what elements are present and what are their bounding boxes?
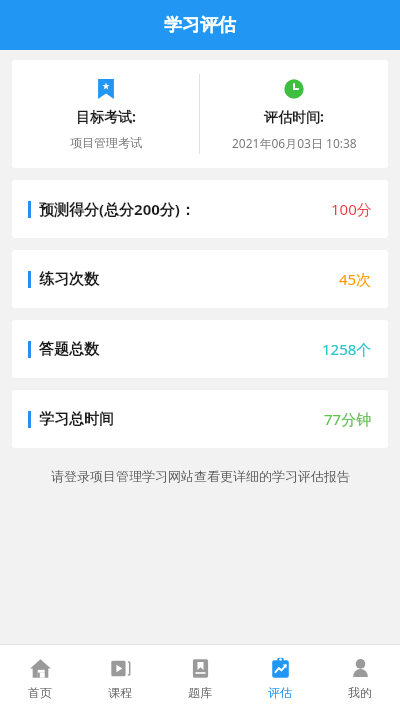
button[interactable]: 预测得分(总分200分)： (12, 180, 388, 238)
staticText: 2021年06月03日 10:38 (232, 135, 357, 151)
staticText: 77分钟 (324, 409, 372, 429)
staticText: 1258个 (322, 339, 372, 359)
staticText: 学习总时间 (39, 410, 114, 429)
staticText: 题库 (188, 685, 212, 700)
button[interactable]: 首页 (0, 645, 80, 711)
staticText: 目标考试: (76, 107, 136, 126)
staticText: 我的 (348, 685, 372, 700)
button[interactable]: 我的 (320, 645, 400, 711)
button[interactable]: 答题总数 (12, 320, 388, 378)
staticText: 100分 (331, 199, 372, 219)
button[interactable]: 题库 (160, 645, 240, 711)
staticText: 课程 (108, 685, 132, 700)
button[interactable]: 评估 (240, 645, 320, 711)
button[interactable]: 练习次数 (12, 250, 388, 308)
staticText: 首页 (28, 685, 52, 700)
button[interactable]: 课程 (80, 645, 160, 711)
staticText: 答题总数 (39, 340, 99, 359)
staticText: 评估时间: (264, 107, 324, 126)
button[interactable]: 学习总时间 (12, 390, 388, 448)
staticText: 45次 (339, 269, 372, 289)
staticText: 练习次数 (39, 270, 99, 289)
staticText: 项目管理考试 (70, 135, 142, 150)
staticText: 评估 (268, 685, 292, 700)
staticText: 预测得分(总分200分)： (39, 199, 195, 219)
staticText: 学习评估 (164, 14, 236, 37)
staticText: 请登录项目管理学习网站查看更详细的学习评估报告 (51, 468, 350, 484)
button[interactable]: 目标考试: (12, 60, 388, 168)
